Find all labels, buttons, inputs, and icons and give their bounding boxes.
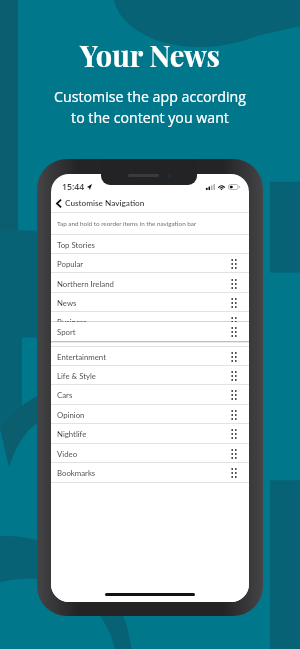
staticText: Opinion — [57, 410, 85, 419]
staticText: 15:44 — [62, 181, 85, 193]
button[interactable]: Top Stories — [51, 235, 249, 254]
button[interactable]: Nightlife — [51, 424, 249, 443]
button[interactable]: Opinion — [51, 405, 249, 424]
staticText: Customise the app according to the conte… — [54, 87, 246, 128]
staticText: News — [57, 298, 77, 307]
staticText: Sport — [57, 327, 76, 336]
other: Reorder — [231, 259, 237, 269]
button[interactable]: Northern Ireland — [51, 274, 249, 293]
other: Reorder — [231, 410, 237, 420]
staticText: Top Stories — [57, 240, 95, 249]
button[interactable]: Popular — [51, 254, 249, 273]
button[interactable]: News — [51, 293, 249, 312]
staticText: Customise Navigation — [65, 198, 145, 208]
staticText: Business — [57, 317, 87, 326]
other: Reorder — [231, 429, 237, 439]
other: Reorder — [231, 327, 237, 337]
staticText: Northern Ireland — [57, 279, 114, 288]
staticText: Entertainment — [57, 352, 106, 361]
button[interactable]: Video — [51, 444, 249, 463]
staticText: Nightlife — [57, 429, 87, 438]
staticText: Life & Style — [57, 371, 96, 380]
button[interactable]: Entertainment — [51, 347, 249, 366]
other: Reorder — [231, 390, 237, 400]
other: Reorder — [231, 371, 237, 381]
other: Reorder — [231, 468, 237, 478]
other: Reorder — [231, 317, 237, 327]
staticText: Popular — [57, 259, 84, 268]
staticText: Your News — [80, 36, 220, 75]
other: Reorder — [231, 279, 237, 289]
button[interactable]: Business — [51, 312, 249, 331]
button[interactable]: Customise Navigation — [51, 194, 249, 212]
other: Reorder — [231, 352, 237, 362]
button[interactable]: Sport — [51, 322, 249, 341]
button[interactable]: Cars — [51, 385, 249, 404]
other: Reorder — [231, 449, 237, 459]
staticText: Video — [57, 449, 78, 458]
button[interactable]: Bookmarks — [51, 463, 249, 482]
button[interactable]: Life & Style — [51, 366, 249, 385]
staticText: Bookmarks — [57, 468, 96, 477]
staticText: Tap and hold to reorder items in the nav… — [57, 220, 197, 228]
staticText: Cars — [57, 390, 73, 399]
other: Reorder — [231, 298, 237, 308]
